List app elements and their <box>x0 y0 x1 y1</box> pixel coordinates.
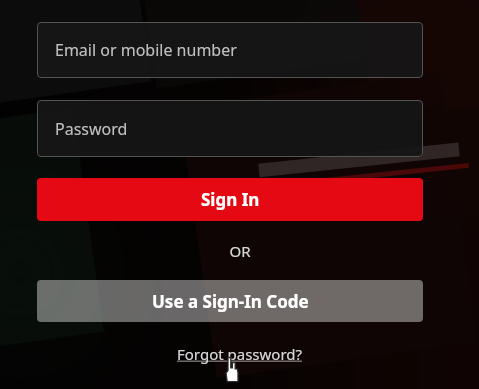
other: Pointer <box>222 357 242 383</box>
button[interactable]: Sign In <box>37 178 423 221</box>
staticText: Forgot password? <box>177 344 303 364</box>
staticText: Sign In <box>201 188 260 211</box>
staticText: OR <box>229 241 251 261</box>
staticText: Password <box>55 118 128 140</box>
staticText: Use a Sign-In Code <box>152 290 309 313</box>
button[interactable]: Password <box>37 100 423 157</box>
button[interactable]: Email or mobile number <box>37 22 423 78</box>
staticText: Email or mobile number <box>55 39 237 61</box>
button[interactable]: Use a Sign-In Code <box>37 280 423 322</box>
button[interactable]: Forgot password? <box>171 341 309 367</box>
